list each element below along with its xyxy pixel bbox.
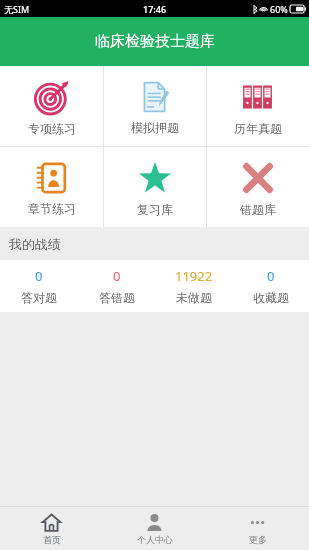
- button[interactable]: 首页: [0, 507, 103, 550]
- staticText: 个人中心: [137, 534, 173, 545]
- staticText: 11922: [175, 267, 213, 285]
- staticText: 首页: [43, 534, 61, 545]
- button[interactable]: 11922: [155, 260, 232, 312]
- staticText: 章节练习: [28, 201, 76, 216]
- button[interactable]: 模拟押题: [104, 66, 206, 146]
- staticText: 我的战绩: [9, 236, 61, 252]
- staticText: 0: [35, 267, 43, 285]
- staticText: 60%: [270, 3, 288, 15]
- other: 更多: [248, 513, 267, 532]
- staticText: 复习库: [137, 202, 173, 217]
- button[interactable]: 章节练习: [0, 147, 103, 227]
- button[interactable]: 复习库: [104, 147, 206, 227]
- staticText: 收藏题: [253, 290, 289, 305]
- staticText: 无SIM: [4, 3, 30, 15]
- staticText: 历年真题: [234, 121, 282, 136]
- staticText: 更多: [249, 534, 267, 545]
- button[interactable]: 更多: [206, 507, 309, 550]
- button[interactable]: 历年真题: [207, 66, 309, 146]
- staticText: 临床检验技士题库: [95, 32, 215, 51]
- staticText: 未做题: [176, 290, 212, 305]
- staticText: 答错题: [99, 290, 135, 305]
- staticText: 错题库: [240, 202, 276, 217]
- staticText: 0: [267, 267, 275, 285]
- button[interactable]: 错题库: [207, 147, 309, 227]
- button[interactable]: 0: [232, 260, 309, 312]
- button[interactable]: 专项练习: [0, 66, 103, 146]
- other: 个人中心: [145, 513, 164, 532]
- staticText: 17:46: [143, 3, 167, 15]
- other: 首页: [42, 513, 61, 532]
- button[interactable]: 0: [0, 260, 78, 312]
- staticText: 模拟押题: [131, 120, 179, 135]
- staticText: 0: [113, 267, 121, 285]
- staticText: 专项练习: [28, 121, 76, 136]
- button[interactable]: 0: [78, 260, 155, 312]
- button[interactable]: 个人中心: [103, 507, 206, 550]
- staticText: 答对题: [21, 290, 57, 305]
